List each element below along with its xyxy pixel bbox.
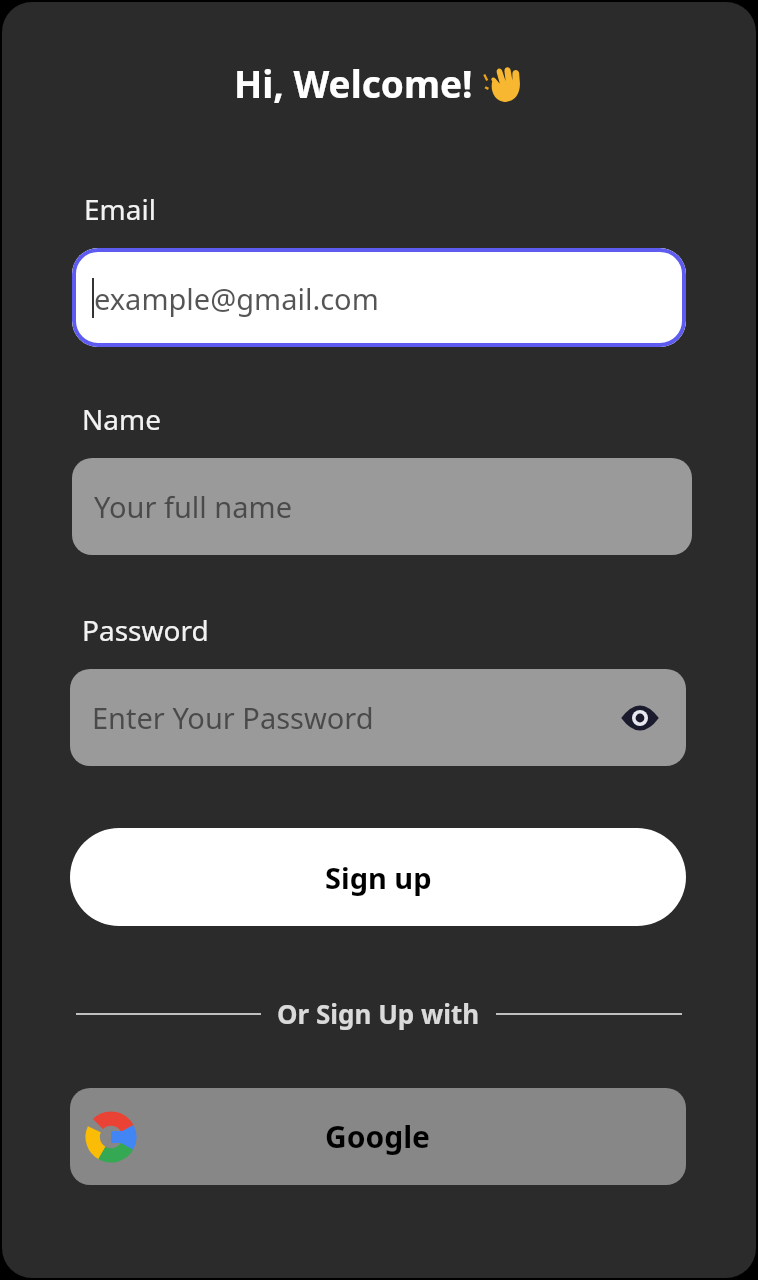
staticText: Sign up xyxy=(325,858,432,897)
staticText: Or Sign Up with xyxy=(277,996,480,1031)
staticText: Hi, Welcome! xyxy=(234,58,473,108)
button[interactable]: Enter Your Password xyxy=(70,669,686,766)
staticText: example@gmail.com xyxy=(94,279,379,318)
button[interactable]: Google xyxy=(70,1088,686,1185)
button[interactable]: Your full name xyxy=(72,458,692,555)
button[interactable]: Sign up xyxy=(70,828,686,926)
staticText: Your full name xyxy=(94,487,293,526)
staticText: Name xyxy=(82,400,161,438)
button[interactable]: Show password xyxy=(618,696,662,740)
button[interactable]: example@gmail.com xyxy=(72,248,686,347)
staticText: Password xyxy=(82,611,209,649)
staticText: Enter Your Password xyxy=(92,698,374,737)
staticText: Google xyxy=(325,1116,431,1157)
staticText: Email xyxy=(84,190,156,228)
